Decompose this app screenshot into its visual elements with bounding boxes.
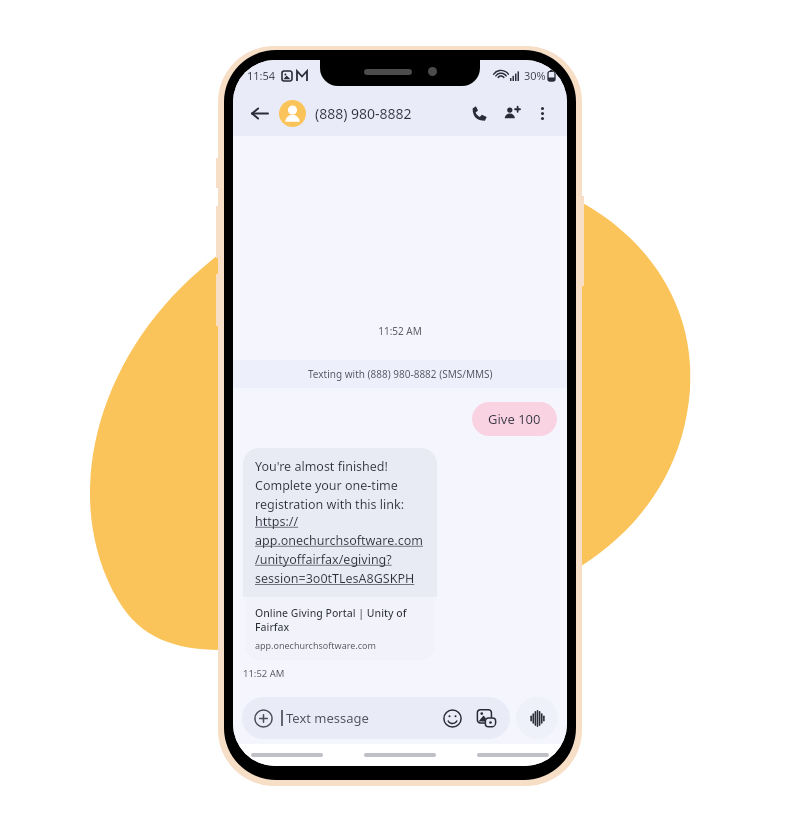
staticText: 11:54: [247, 68, 276, 83]
button[interactable]: Voice message: [516, 697, 558, 739]
staticText: Online Giving Portal | Unity of Fairfax: [255, 606, 425, 634]
staticText: Text message: [286, 709, 369, 727]
staticText: 11:52 AM: [233, 324, 567, 338]
staticText: 11:52 AM: [243, 667, 285, 680]
staticText: 30%: [524, 68, 546, 83]
staticText: Give 100: [488, 410, 541, 428]
button[interactable]: You're almost finished! Complete your on…: [243, 448, 437, 680]
button[interactable]: Add contact: [495, 97, 527, 129]
button[interactable]: Emoji: [440, 706, 464, 730]
button[interactable]: Back: [243, 97, 275, 129]
staticText: (888) 980-8882: [315, 104, 412, 123]
button[interactable]: [279, 100, 306, 127]
button[interactable]: More options: [527, 98, 557, 128]
staticText: Texting with (888) 980-8882 (SMS/MMS): [308, 367, 493, 381]
button[interactable]: Call: [463, 97, 495, 129]
button[interactable]: Attach media: [474, 706, 498, 730]
staticText: You're almost finished! Complete your on…: [255, 458, 425, 513]
staticText: app.onechurchsoftware.com: [255, 639, 376, 651]
button[interactable]: Give 100: [472, 402, 557, 436]
button[interactable]: Text message: [242, 697, 510, 739]
staticText: https://app.onechurchsoftware.com/unityo…: [255, 513, 425, 587]
